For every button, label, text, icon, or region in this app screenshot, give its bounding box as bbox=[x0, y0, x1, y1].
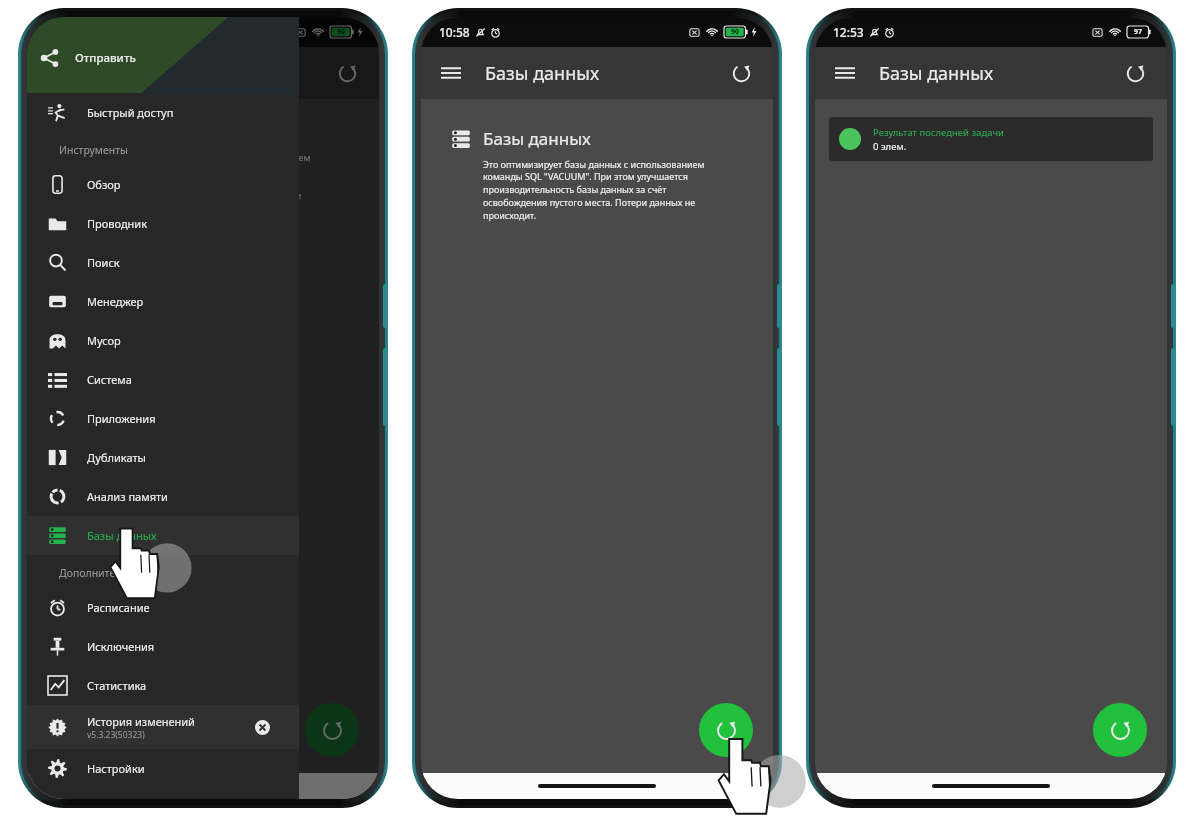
button[interactable]: Open navigation drawer bbox=[825, 53, 865, 93]
button[interactable]: Open navigation drawer bbox=[431, 53, 471, 93]
button[interactable]: Исключения bbox=[27, 627, 299, 666]
button[interactable]: Refresh bbox=[1093, 703, 1147, 757]
staticText: Отправить bbox=[75, 50, 136, 66]
button[interactable]: Система bbox=[27, 360, 299, 399]
button[interactable]: Dismiss changelog bbox=[249, 714, 275, 740]
button[interactable]: Обзор bbox=[27, 165, 299, 204]
staticText: Приложения bbox=[87, 411, 156, 426]
button[interactable]: История изменений bbox=[27, 705, 299, 749]
staticText: 0 элем. bbox=[873, 140, 907, 153]
staticText: Дубликаты bbox=[87, 450, 146, 465]
button[interactable]: Анализ памяти bbox=[27, 477, 299, 516]
button[interactable]: Refresh bbox=[305, 703, 359, 757]
button[interactable]: Проводник bbox=[27, 204, 299, 243]
staticText: Дополнительно bbox=[59, 566, 140, 580]
button[interactable]: Отправить bbox=[41, 41, 136, 75]
button[interactable]: Open navigation drawer bbox=[37, 53, 77, 93]
staticText: Анализ памяти bbox=[87, 489, 168, 504]
button[interactable]: Быстрый доступ bbox=[27, 93, 299, 132]
staticText: Результат последней задачи bbox=[873, 126, 1004, 139]
staticText: Исключения bbox=[87, 639, 155, 654]
button[interactable]: Расписание bbox=[27, 588, 299, 627]
button[interactable]: Refresh bbox=[1115, 53, 1155, 93]
staticText: v5.3.23(50323) bbox=[87, 729, 145, 741]
button[interactable]: Настройки bbox=[27, 749, 299, 788]
button[interactable]: Дубликаты bbox=[27, 438, 299, 477]
staticText: Настройки bbox=[87, 761, 145, 776]
staticText: Система bbox=[87, 372, 132, 387]
staticText: Инструменты bbox=[59, 143, 129, 157]
staticText: Базы данных bbox=[87, 528, 157, 543]
staticText: Это оптимизирует базы данных с использов… bbox=[89, 151, 311, 215]
staticText: Менеджер bbox=[87, 294, 144, 309]
button[interactable]: Refresh bbox=[721, 53, 761, 93]
button[interactable]: Мусор bbox=[27, 321, 299, 360]
button[interactable]: Refresh bbox=[699, 703, 753, 757]
button[interactable]: Результат последней задачи bbox=[829, 117, 1153, 161]
staticText: Мусор bbox=[87, 333, 121, 348]
staticText: Расписание bbox=[87, 600, 150, 615]
button[interactable]: Поиск bbox=[27, 243, 299, 282]
staticText: 90 bbox=[731, 27, 740, 37]
staticText: Быстрый доступ bbox=[87, 105, 174, 120]
staticText: Проводник bbox=[87, 216, 148, 231]
staticText: Обзор bbox=[87, 177, 121, 192]
staticText: 90 bbox=[337, 27, 346, 37]
staticText: История изменений bbox=[87, 714, 195, 729]
staticText: 10:58 bbox=[439, 24, 470, 40]
staticText: 97 bbox=[1134, 27, 1143, 37]
staticText: Базы данных bbox=[483, 127, 591, 150]
button[interactable]: Базы данных bbox=[27, 516, 299, 555]
button[interactable]: Refresh bbox=[327, 53, 367, 93]
staticText: Базы данных bbox=[485, 61, 600, 86]
staticText: Это оптимизирует базы данных с использов… bbox=[483, 158, 705, 222]
button[interactable]: Приложения bbox=[27, 399, 299, 438]
staticText: 12:53 bbox=[833, 24, 864, 40]
staticText: Поиск bbox=[87, 255, 120, 270]
staticText: Базы данных bbox=[879, 61, 994, 86]
button[interactable]: Статистика bbox=[27, 666, 299, 705]
button[interactable]: Менеджер bbox=[27, 282, 299, 321]
staticText: Статистика bbox=[87, 678, 147, 693]
